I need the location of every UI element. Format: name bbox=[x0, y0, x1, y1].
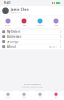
staticText: Points bbox=[54, 24, 58, 26]
staticText: Shop bbox=[22, 96, 26, 98]
button[interactable]: Jamie Chen bbox=[0, 6, 64, 15]
button[interactable]: About bbox=[0, 44, 64, 49]
button[interactable]: Wallet bbox=[16, 18, 32, 26]
staticText: Home bbox=[6, 96, 10, 98]
staticText: Terms of Service · Privacy Policy bbox=[21, 86, 43, 88]
button[interactable]: My Orders bbox=[0, 29, 64, 34]
staticText: v2.4.1 bbox=[49, 45, 58, 48]
staticText: About bbox=[7, 45, 16, 48]
button[interactable]: Settings bbox=[0, 39, 64, 44]
button[interactable]: Orders bbox=[0, 18, 16, 26]
staticText: Signed in as jamie@mail.com bbox=[23, 84, 40, 85]
staticText: Jamie Chen bbox=[11, 8, 29, 11]
staticText: Orders bbox=[5, 24, 11, 26]
button[interactable]: Coupons bbox=[32, 18, 48, 26]
staticText: Member · 88203 bbox=[11, 12, 22, 14]
staticText: Settings bbox=[7, 40, 18, 43]
staticText: Cart bbox=[38, 96, 41, 98]
button[interactable]: Shop bbox=[16, 93, 32, 98]
staticText: Addresses bbox=[7, 35, 21, 38]
staticText: Coupons bbox=[36, 24, 43, 26]
button[interactable]: Cart bbox=[32, 93, 48, 98]
staticText: Wallet bbox=[22, 24, 25, 26]
button[interactable]: Mine bbox=[48, 93, 64, 98]
button[interactable]: Addresses bbox=[0, 34, 64, 39]
staticText: 9:41 bbox=[4, 1, 11, 5]
button[interactable]: Home bbox=[0, 93, 16, 98]
button[interactable]: Points bbox=[48, 18, 64, 26]
staticText: My Orders bbox=[7, 30, 20, 33]
staticText: Mine bbox=[54, 96, 57, 98]
